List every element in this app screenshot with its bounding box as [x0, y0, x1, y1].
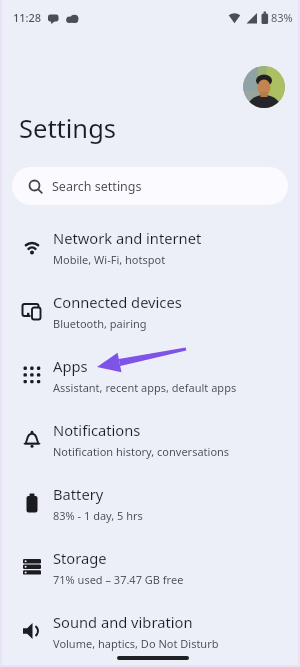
staticText: Notifications — [53, 420, 141, 440]
button[interactable]: Apps — [0, 343, 300, 407]
button[interactable]: Battery — [0, 471, 300, 535]
button[interactable]: Storage — [0, 535, 300, 599]
staticText: Settings — [19, 111, 117, 146]
button[interactable]: Notifications — [0, 407, 300, 471]
staticText: Battery — [53, 484, 104, 504]
staticText: Bluetooth, pairing — [53, 316, 147, 331]
staticText: 83% - 1 day, 5 hrs — [53, 508, 143, 523]
button[interactable]: Sound and vibration — [0, 599, 300, 663]
button[interactable]: Connected devices — [0, 279, 300, 343]
staticText: Notification history, conversations — [53, 444, 230, 459]
staticText: Sound and vibration — [53, 612, 193, 632]
staticText: Mobile, Wi-Fi, hotspot — [53, 252, 166, 267]
staticText: Volume, haptics, Do Not Disturb — [53, 636, 219, 651]
staticText: Network and internet — [53, 228, 202, 248]
staticText: 83% — [271, 10, 293, 25]
staticText: Storage — [53, 548, 107, 568]
staticText: Search settings — [52, 178, 142, 195]
staticText: 71% used – 37.47 GB free — [53, 572, 184, 587]
staticText: Connected devices — [53, 292, 182, 312]
staticText: 11:28 — [13, 10, 42, 25]
staticText: Apps — [53, 356, 88, 376]
button[interactable]: Network and internet — [0, 215, 300, 279]
button[interactable]: Search settings — [12, 167, 288, 205]
button[interactable] — [243, 66, 285, 108]
staticText: Assistant, recent apps, default apps — [53, 380, 237, 395]
